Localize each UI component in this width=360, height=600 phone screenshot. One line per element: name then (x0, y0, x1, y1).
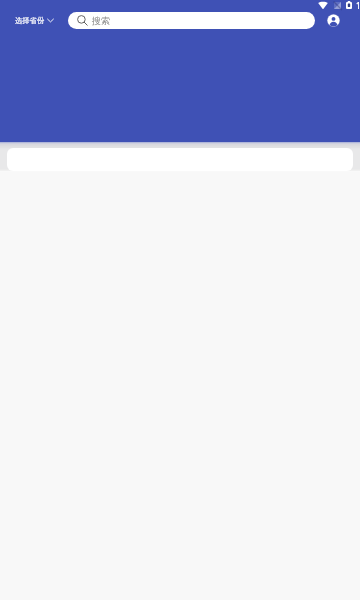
button[interactable]: 搜索 (68, 12, 315, 29)
staticText: 选择省份 (15, 16, 45, 25)
staticText: 1 (356, 0, 360, 11)
staticText: 搜索 (92, 15, 110, 26)
button[interactable]: Account (325, 12, 342, 29)
button[interactable]: 选择省份 (13, 11, 56, 29)
